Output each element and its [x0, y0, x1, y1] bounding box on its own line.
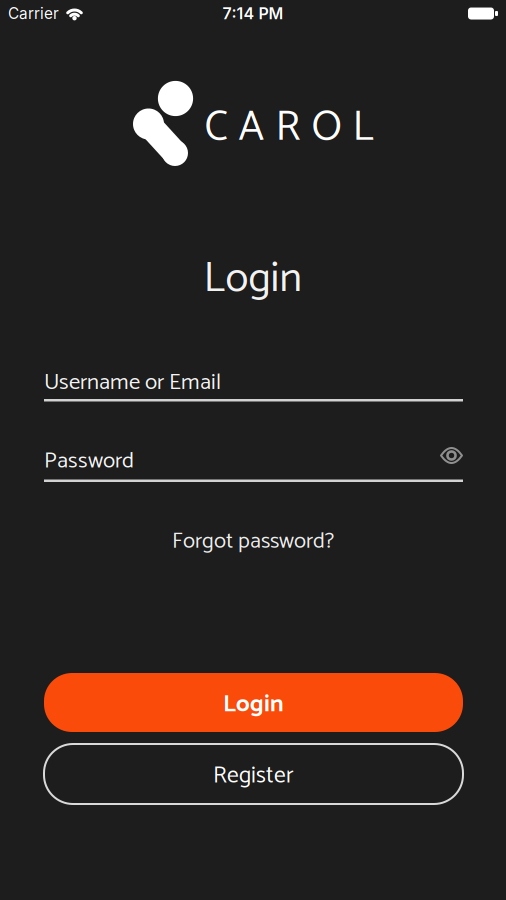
staticText: Login — [223, 685, 284, 724]
button[interactable]: Password — [44, 442, 463, 482]
button[interactable]: Show password — [440, 442, 463, 464]
staticText: Password — [44, 442, 134, 480]
button[interactable]: Forgot password? — [172, 523, 334, 560]
staticText: Forgot password? — [172, 523, 334, 560]
staticText: Username or Email — [44, 364, 221, 401]
staticText: CAROL — [204, 94, 373, 162]
button[interactable]: Register — [44, 744, 463, 804]
button[interactable]: Username or Email — [44, 364, 463, 401]
staticText: Carrier — [8, 4, 59, 23]
button[interactable]: Login — [44, 673, 463, 732]
staticText: Register — [213, 757, 294, 795]
staticText: 7:14 PM — [222, 4, 283, 23]
staticText: Login — [203, 244, 302, 314]
